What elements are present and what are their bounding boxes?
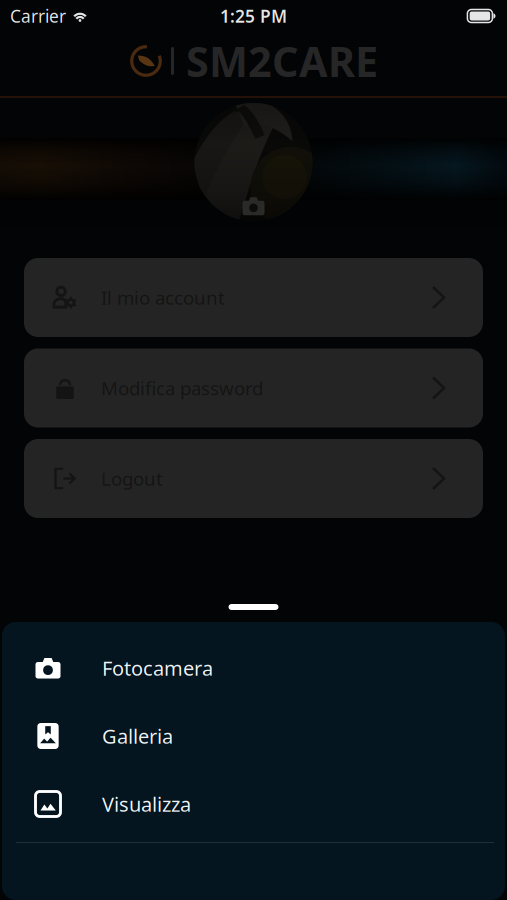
staticText: Logout (101, 466, 163, 491)
staticText: SM2CARE (186, 34, 378, 88)
button[interactable]: Galleria (2, 702, 505, 770)
staticText: Galleria (102, 723, 173, 749)
staticText: Fotocamera (102, 655, 213, 681)
staticText: 1:25 PM (220, 4, 287, 27)
button[interactable]: Modifica password (24, 348, 483, 427)
button[interactable]: Visualizza (2, 770, 505, 838)
staticText: Modifica password (101, 376, 263, 400)
button[interactable]: Fotocamera (2, 634, 505, 702)
staticText: Il mio account (101, 285, 225, 310)
staticText: Carrier (10, 4, 66, 27)
staticText: Visualizza (102, 791, 191, 817)
